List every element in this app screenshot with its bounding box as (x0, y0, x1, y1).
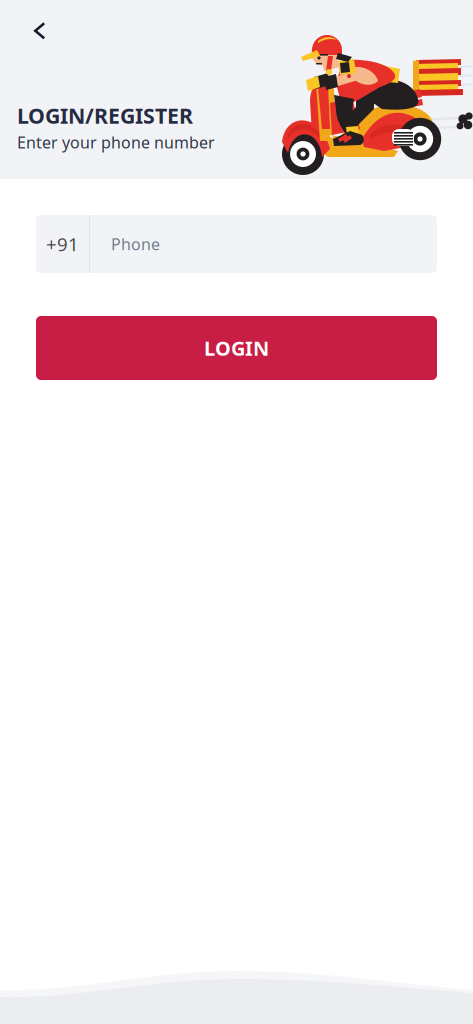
button[interactable]: Back (17, 0, 59, 54)
button[interactable]: LOGIN (36, 316, 437, 380)
staticText: Phone (111, 233, 160, 255)
staticText: Enter your phone number (17, 132, 215, 153)
button[interactable]: Phone (90, 215, 437, 273)
staticText: +91 (46, 232, 79, 256)
staticText: LOGIN (204, 335, 269, 361)
staticText: LOGIN/REGISTER (17, 101, 193, 130)
button[interactable]: +91 (36, 215, 89, 273)
